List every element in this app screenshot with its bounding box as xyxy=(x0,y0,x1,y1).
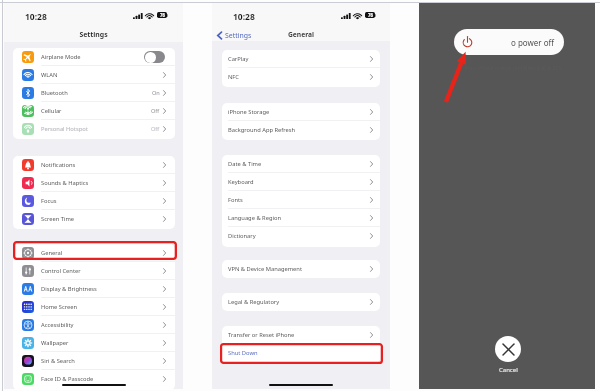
staticText: Fonts xyxy=(228,196,243,204)
button[interactable]: WLAN xyxy=(13,66,175,84)
staticText: Focus xyxy=(41,197,57,205)
button[interactable]: Control Center xyxy=(13,262,175,280)
button[interactable]: Background App Refresh xyxy=(222,121,380,139)
staticText: Cancel xyxy=(499,366,518,374)
staticText: Cellular xyxy=(41,107,62,115)
staticText: General xyxy=(41,249,63,257)
button[interactable]: Focus xyxy=(13,192,175,210)
staticText: Settings xyxy=(4,30,183,39)
button[interactable]: Notifications xyxy=(13,156,175,174)
staticText: Airplane Mode xyxy=(41,53,81,61)
button[interactable]: Face ID & Passcode xyxy=(13,370,175,388)
button[interactable]: Display & Brightness xyxy=(13,280,175,298)
button[interactable]: NFC xyxy=(222,68,380,86)
staticText: iPhone Storage xyxy=(228,108,270,116)
staticText: Background App Refresh xyxy=(228,126,296,134)
staticText: WLAN xyxy=(41,71,58,79)
button[interactable]: Sounds & Haptics xyxy=(13,174,175,192)
button[interactable]: Accessibility xyxy=(13,316,175,334)
staticText: Off xyxy=(151,125,160,133)
button[interactable]: General xyxy=(13,244,175,262)
staticText: Screen Time xyxy=(41,215,75,223)
staticText: Language & Region xyxy=(228,214,281,222)
staticText: Personal Hotspot xyxy=(41,125,88,133)
staticText: General xyxy=(212,30,390,39)
button[interactable]: Home Screen xyxy=(13,298,175,316)
button[interactable]: Fonts xyxy=(222,191,380,209)
button[interactable]: Legal & Regulatory xyxy=(222,293,380,311)
staticText: 10:28 xyxy=(233,11,255,23)
button[interactable]: Language & Region xyxy=(222,209,380,227)
staticText: Shut Down xyxy=(228,349,258,357)
staticText: Date & Time xyxy=(228,160,262,168)
button[interactable]: Shut Down xyxy=(222,344,380,362)
staticText: CarPlay xyxy=(228,55,249,63)
button[interactable]: Cancel xyxy=(495,336,521,374)
staticText: Accessibility xyxy=(41,321,74,329)
button[interactable]: iPhone Storage xyxy=(222,103,380,121)
staticText: VPN & Device Management xyxy=(228,265,302,273)
staticText: 76 xyxy=(368,12,373,18)
button[interactable]: Date & Time xyxy=(222,155,380,173)
staticText: NFC xyxy=(228,73,239,81)
button[interactable]: Wallpaper xyxy=(13,334,175,352)
button[interactable]: Siri & Search xyxy=(13,352,175,370)
staticText: Bluetooth xyxy=(41,89,68,97)
staticText: Sounds & Haptics xyxy=(41,179,89,187)
button[interactable]: Screen Time xyxy=(13,210,175,228)
staticText: Settings xyxy=(225,31,252,40)
staticText: Display & Brightness xyxy=(41,285,97,293)
button[interactable]: Transfer or Reset iPhone xyxy=(222,326,380,344)
button[interactable]: Settings xyxy=(217,30,252,41)
staticText: Transfer or Reset iPhone xyxy=(228,331,295,339)
staticText: Dictionary xyxy=(228,232,256,240)
button[interactable]: Bluetooth xyxy=(13,84,175,102)
staticText: On xyxy=(152,89,160,97)
staticText: 76 xyxy=(160,12,165,18)
staticText: Off xyxy=(151,107,160,115)
staticText: Keyboard xyxy=(228,178,254,186)
button[interactable]: Airplane Mode toggle xyxy=(144,51,165,63)
button[interactable]: Keyboard xyxy=(222,173,380,191)
staticText: Notifications xyxy=(41,161,76,169)
button[interactable]: Dictionary xyxy=(222,227,380,245)
staticText: o power off xyxy=(511,37,555,48)
staticText: Face ID & Passcode xyxy=(41,375,94,383)
staticText: Control Center xyxy=(41,267,81,275)
button[interactable]: Personal Hotspot xyxy=(13,120,175,138)
staticText: Home Screen xyxy=(41,303,78,311)
button[interactable]: CarPlay xyxy=(222,50,380,68)
button[interactable]: VPN & Device Management xyxy=(222,260,380,278)
button[interactable]: Airplane Mode xyxy=(13,48,175,66)
staticText: 10:28 xyxy=(25,11,47,23)
staticText: Legal & Regulatory xyxy=(228,298,280,306)
staticText: Wallpaper xyxy=(41,339,69,347)
button[interactable]: Cellular xyxy=(13,102,175,120)
button[interactable]: o power off xyxy=(454,29,564,55)
staticText: Siri & Search xyxy=(41,357,75,365)
